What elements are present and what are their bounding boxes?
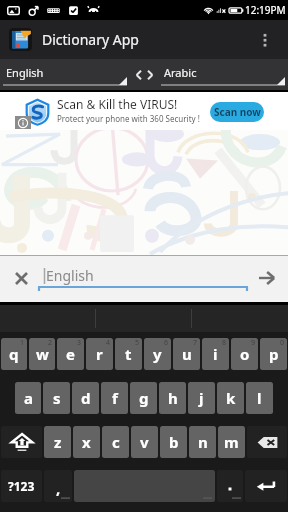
- staticText: English: [6, 65, 44, 80]
- button[interactable]: k: [217, 382, 244, 414]
- staticText: x: [82, 432, 91, 452]
- staticText: Scan & Kill the VIRUS!: [57, 96, 178, 112]
- button[interactable]: ,: [44, 470, 72, 502]
- button[interactable]: g: [130, 382, 157, 414]
- staticText: y: [153, 344, 162, 364]
- staticText: r: [96, 344, 103, 364]
- staticText: 2: [48, 338, 53, 348]
- button[interactable]: Arabic: [161, 59, 285, 90]
- button[interactable]: Search: [246, 258, 286, 298]
- staticText: w: [36, 344, 49, 364]
- staticText: 3: [77, 338, 82, 348]
- button[interactable]: v: [131, 426, 158, 458]
- button[interactable]: z: [44, 426, 71, 458]
- staticText: Protect your phone with 360 Security !: [57, 113, 200, 124]
- staticText: v: [140, 432, 149, 452]
- button[interactable]: d: [72, 382, 99, 414]
- button[interactable]: s: [43, 382, 70, 414]
- button[interactable]: Ad info: [0, 92, 288, 130]
- staticText: n: [198, 432, 208, 452]
- staticText: 8: [222, 338, 227, 348]
- staticText: d: [81, 388, 91, 408]
- staticText: e: [66, 344, 75, 364]
- staticText: a: [24, 388, 33, 408]
- staticText: t: [125, 344, 132, 364]
- button[interactable]: h: [159, 382, 186, 414]
- button[interactable]: i: [202, 338, 229, 370]
- staticText: j: [199, 388, 204, 408]
- button[interactable]: Shift: [1, 426, 42, 458]
- button[interactable]: u: [173, 338, 200, 370]
- button[interactable]: Ad info: [15, 116, 31, 129]
- button[interactable]: n: [189, 426, 216, 458]
- staticText: 7: [193, 338, 198, 348]
- staticText: u: [182, 344, 192, 364]
- button[interactable]: Clear: [1, 258, 41, 298]
- staticText: s: [53, 388, 61, 408]
- staticText: 5: [135, 338, 140, 348]
- staticText: Scan now: [214, 105, 261, 119]
- button[interactable]: f: [101, 382, 128, 414]
- button[interactable]: English: [3, 59, 127, 90]
- staticText: Arabic: [164, 65, 197, 80]
- staticText: English: [46, 266, 94, 285]
- button[interactable]: t: [115, 338, 142, 370]
- staticText: ?123: [8, 478, 35, 494]
- staticText: p: [269, 344, 279, 364]
- staticText: 4: [106, 338, 111, 348]
- button[interactable]: [217, 470, 243, 502]
- staticText: q: [9, 344, 19, 364]
- staticText: 6: [164, 338, 169, 348]
- button[interactable]: Enter: [245, 470, 287, 502]
- staticText: b: [169, 432, 179, 452]
- button[interactable]: Scan now: [210, 102, 264, 122]
- button[interactable]: c: [102, 426, 129, 458]
- button[interactable]: English: [38, 267, 248, 291]
- staticText: c: [112, 432, 120, 452]
- button[interactable]: a: [15, 382, 41, 414]
- button[interactable]: y: [144, 338, 171, 370]
- staticText: o: [240, 344, 250, 364]
- button[interactable]: j: [188, 382, 215, 414]
- staticText: ,: [56, 478, 61, 498]
- staticText: 0: [280, 338, 285, 348]
- staticText: l: [257, 388, 262, 408]
- button[interactable]: o: [231, 338, 258, 370]
- button[interactable]: w: [29, 338, 55, 370]
- button[interactable]: r: [86, 338, 113, 370]
- button[interactable]: q: [1, 338, 27, 370]
- staticText: h: [168, 388, 178, 408]
- staticText: g: [139, 388, 149, 408]
- button[interactable]: m: [218, 426, 245, 458]
- staticText: i: [213, 344, 218, 364]
- button[interactable]: b: [160, 426, 187, 458]
- button[interactable]: l: [246, 382, 273, 414]
- staticText: 12:19PM: [245, 3, 286, 17]
- button[interactable]: Backspace: [247, 426, 287, 458]
- staticText: m: [224, 432, 239, 452]
- staticText: 1: [20, 338, 25, 348]
- button[interactable]: Swap languages: [127, 59, 161, 90]
- button[interactable]: p: [260, 338, 287, 370]
- button[interactable]: More options: [246, 21, 284, 59]
- button[interactable]: x: [73, 426, 100, 458]
- staticText: f: [112, 388, 118, 408]
- staticText: Dictionary App: [42, 30, 139, 49]
- staticText: 9: [251, 338, 256, 348]
- staticText: k: [226, 388, 236, 408]
- button[interactable]: e: [57, 338, 84, 370]
- staticText: z: [54, 432, 62, 452]
- button[interactable]: ?123: [1, 470, 42, 502]
